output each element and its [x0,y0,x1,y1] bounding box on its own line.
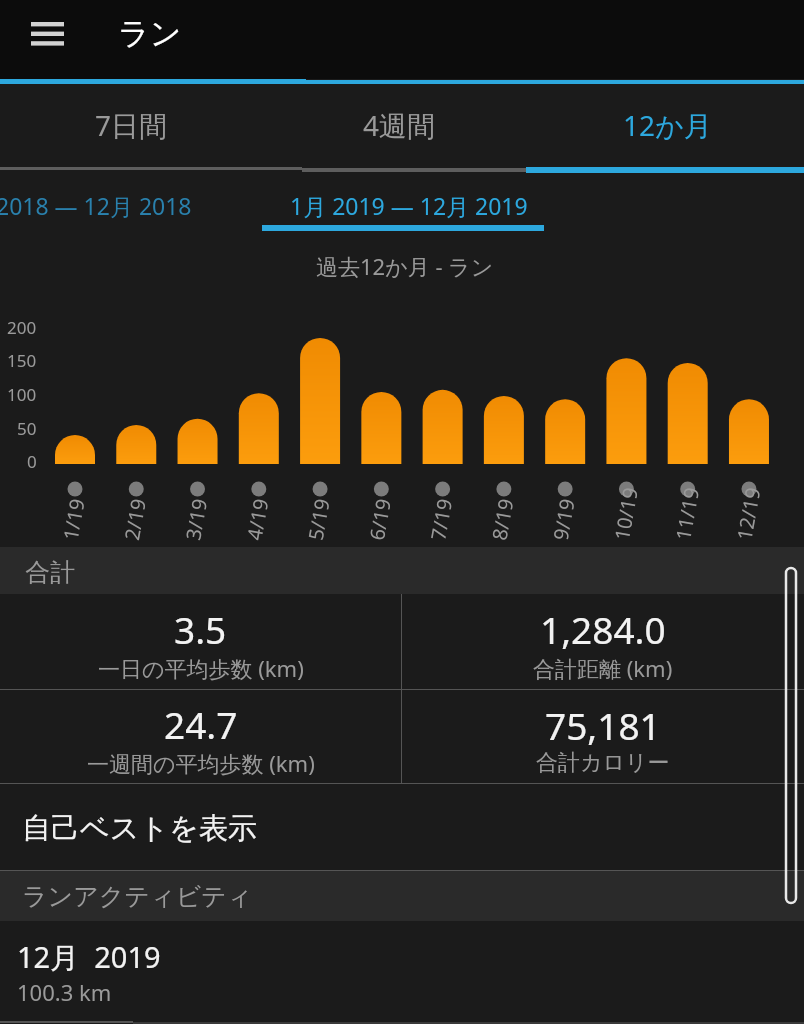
staticText: 合計 [25,557,75,588]
button[interactable]: 3.5 [0,594,401,689]
button[interactable]: 12か月 [536,84,804,166]
button[interactable]: 7日間 [0,84,268,166]
staticText: 一週間の平均歩数 (km) [87,748,315,778]
staticText: 2018 — 12月 2018 [0,190,192,221]
staticText: 7日間 [95,106,168,144]
button[interactable]: 自己ベストを表示 [0,784,804,870]
staticText: 12月 2019 [17,937,161,977]
staticText: 100.3 km [17,977,112,1007]
button[interactable]: 1,284.0 [402,594,804,689]
button[interactable]: 4週間 [268,84,536,166]
button[interactable]: 24.7 [0,690,401,783]
staticText: 1,284.0 [540,604,666,654]
staticText: ラン [118,14,182,53]
staticText: 12か月 [623,106,712,144]
staticText: 過去12か月 - ラン [316,251,494,281]
staticText: 1月 2019 — 12月 2019 [290,190,528,221]
button[interactable]: Menu [14,3,80,65]
button[interactable]: 75,181 [402,690,804,783]
staticText: 24.7 [164,699,238,749]
staticText: 4週間 [363,106,436,144]
staticText: 合計カロリー [536,749,670,777]
staticText: 75,181 [545,700,661,750]
staticText: ランアクティビティ [22,881,253,912]
staticText: 3.5 [174,604,227,654]
staticText: 一日の平均歩数 (km) [98,653,304,683]
staticText: 自己ベストを表示 [22,810,257,847]
button[interactable]: 12月 2019 [0,921,804,1016]
staticText: 合計距離 (km) [533,653,673,683]
